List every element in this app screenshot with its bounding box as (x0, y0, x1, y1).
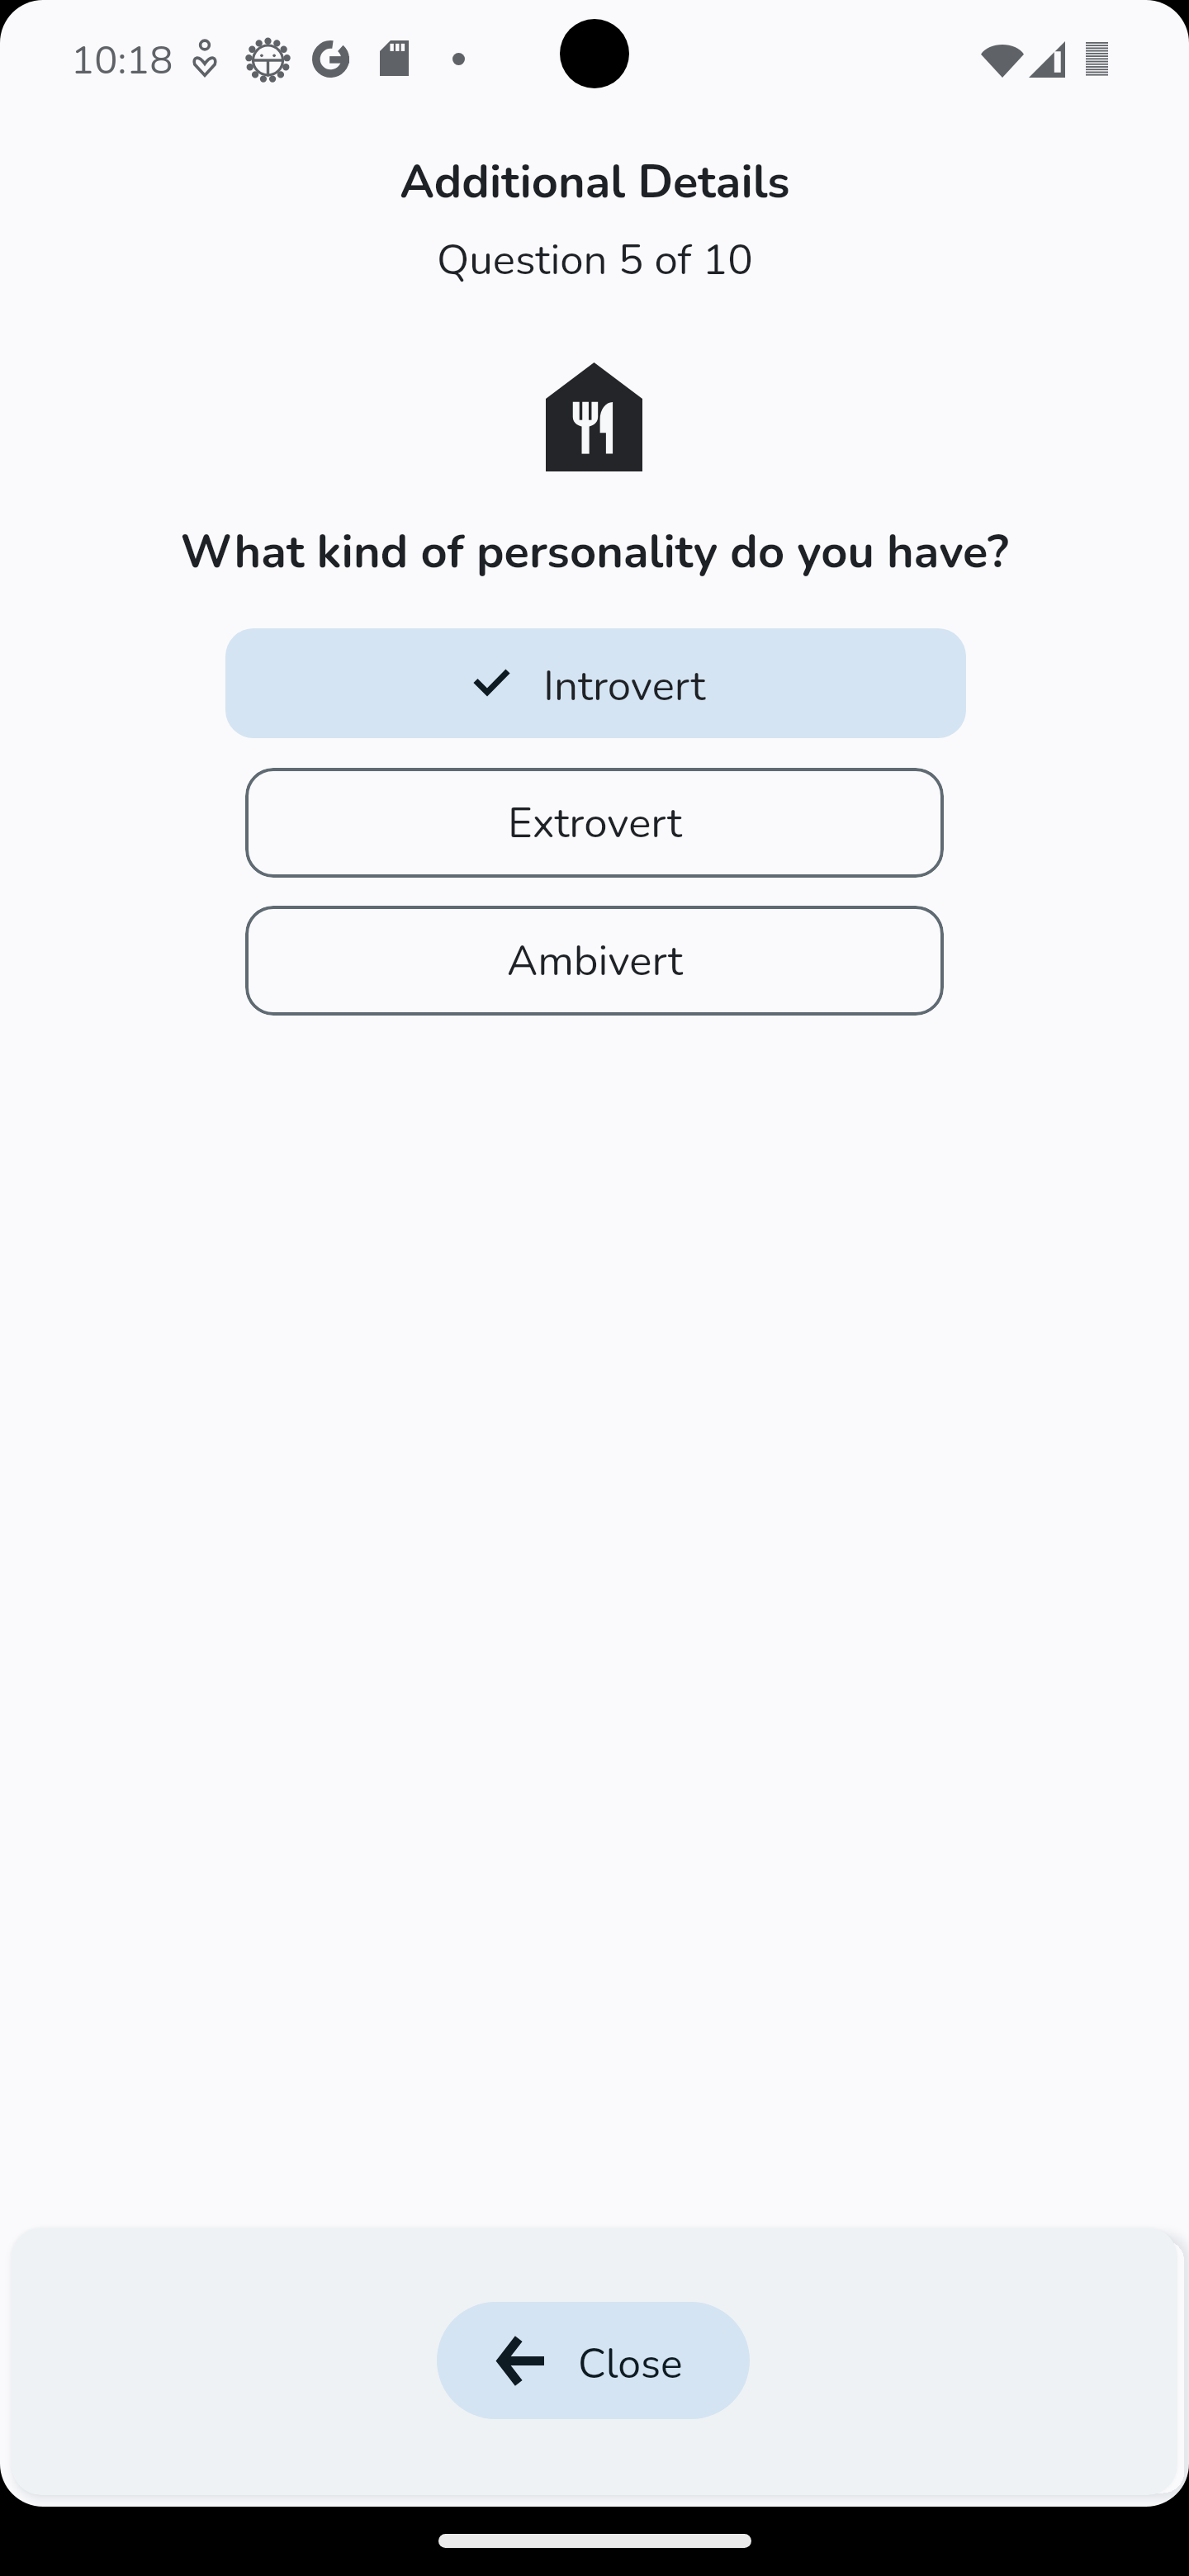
button[interactable]: Extrovert (245, 768, 944, 878)
staticText: Ambivert (507, 932, 683, 990)
staticText: Question 5 of 10 (437, 231, 753, 289)
staticText: Introvert (543, 657, 706, 715)
staticText: 10:18 (71, 34, 173, 87)
other: Restaurant (546, 362, 642, 471)
button[interactable]: Introvert (225, 628, 966, 738)
staticText: Close (578, 2336, 683, 2392)
other: Back (497, 2337, 544, 2384)
button[interactable]: Ambivert (245, 906, 944, 1016)
staticText: What kind of personality do you have? (180, 520, 1009, 583)
staticText: Extrovert (508, 794, 682, 852)
button[interactable]: Back (437, 2302, 750, 2419)
staticText: Additional Details (400, 150, 790, 213)
